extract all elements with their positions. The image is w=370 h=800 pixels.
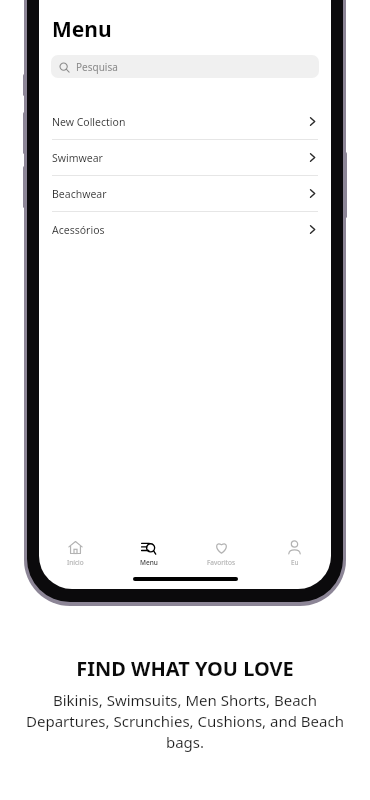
staticText: Swimwear <box>52 151 103 165</box>
button[interactable]: Início <box>39 531 112 575</box>
button[interactable]: Menu <box>112 531 185 575</box>
button[interactable]: Pesquisa <box>51 55 319 78</box>
staticText: Menu <box>140 558 158 567</box>
staticText: FIND WHAT YOU LOVE <box>76 655 294 682</box>
staticText: Bikinis, Swimsuits, Men Shorts, Beach De… <box>16 690 354 753</box>
staticText: New Collection <box>52 115 126 129</box>
staticText: Acessórios <box>52 223 105 237</box>
button[interactable]: Acessórios <box>39 212 331 247</box>
button[interactable]: New Collection <box>39 104 331 139</box>
staticText: Menu <box>52 15 112 44</box>
button[interactable]: Beachwear <box>39 176 331 211</box>
staticText: Início <box>67 558 84 567</box>
button[interactable]: Eu <box>258 531 331 575</box>
staticText: Favoritos <box>207 558 236 567</box>
staticText: Beachwear <box>52 187 107 201</box>
button[interactable]: Swimwear <box>39 140 331 175</box>
button[interactable]: Favoritos <box>185 531 258 575</box>
staticText: Eu <box>291 558 299 567</box>
staticText: Pesquisa <box>76 60 118 74</box>
